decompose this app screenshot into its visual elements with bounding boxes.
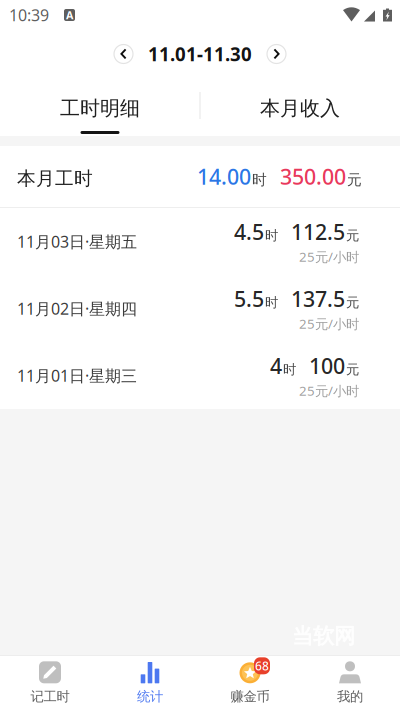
staticText: 时	[265, 227, 278, 244]
button[interactable]: 68	[200, 656, 300, 710]
staticText: 元	[347, 171, 362, 189]
staticText: 工时明细	[60, 96, 140, 121]
staticText: 11月01日·星期三	[17, 365, 137, 386]
staticText: 记工时	[30, 688, 69, 705]
staticText: 赚金币	[230, 688, 269, 705]
button[interactable]: 11月01日·星期三	[0, 342, 400, 409]
staticText: 本月收入	[260, 96, 340, 121]
staticText: 4.5	[234, 217, 264, 246]
button[interactable]: Next month	[267, 44, 286, 63]
staticText: 137.5	[291, 284, 345, 313]
staticText: 68	[255, 658, 269, 674]
staticText: 100	[309, 351, 345, 380]
staticText: 统计	[137, 688, 163, 705]
button[interactable]: 11月03日·星期五	[0, 208, 400, 275]
staticText: 时	[265, 294, 278, 311]
staticText: 时	[283, 361, 296, 378]
staticText: 本月工时	[17, 167, 93, 190]
button[interactable]: 本月收入	[200, 75, 400, 136]
staticText: 10:39	[9, 4, 49, 26]
button[interactable]: 工时明细	[0, 75, 200, 136]
staticText: 25元/小时	[299, 315, 359, 332]
staticText: 元	[346, 361, 359, 378]
staticText: 11.01-11.30	[148, 42, 252, 66]
staticText: 112.5	[291, 217, 345, 246]
staticText: 元	[346, 294, 359, 311]
staticText: 时	[252, 171, 267, 189]
staticText: 14.00	[197, 162, 251, 191]
staticText: 350.00	[280, 162, 346, 191]
button[interactable]: 11月02日·星期四	[0, 275, 400, 342]
button[interactable]: 我的	[300, 656, 400, 710]
staticText: 11月03日·星期五	[17, 231, 137, 252]
staticText: 11月02日·星期四	[17, 298, 137, 319]
staticText: 我的	[337, 688, 363, 705]
staticText: 5.5	[234, 284, 264, 313]
staticText: 4	[270, 351, 282, 380]
staticText: 25元/小时	[299, 382, 359, 399]
staticText: 25元/小时	[299, 248, 359, 265]
staticText: A	[66, 8, 73, 22]
staticText: 元	[346, 227, 359, 244]
button[interactable]: Previous month	[114, 44, 133, 63]
staticText: 当软网	[292, 623, 355, 649]
button[interactable]: 统计	[100, 656, 200, 710]
button[interactable]: 记工时	[0, 656, 100, 710]
